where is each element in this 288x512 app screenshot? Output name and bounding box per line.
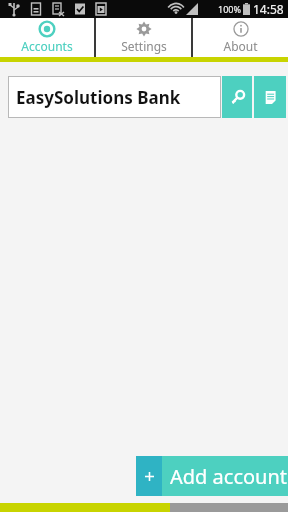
staticText: Add account <box>170 463 288 490</box>
button[interactable]: Add account <box>136 456 288 496</box>
button[interactable]: About <box>193 18 288 57</box>
button[interactable]: Accounts <box>0 18 94 57</box>
staticText: About <box>223 38 258 54</box>
button[interactable]: Show password <box>222 76 252 118</box>
staticText: EasySolutions Bank <box>16 86 181 109</box>
button[interactable]: Settings <box>96 18 191 57</box>
button[interactable]: Notes <box>254 76 286 118</box>
staticText: 14:58 <box>253 1 284 17</box>
button[interactable]: EasySolutions Bank <box>8 76 221 118</box>
staticText: Accounts <box>21 38 73 54</box>
staticText: Settings <box>121 38 167 54</box>
staticText: 100% <box>218 3 241 15</box>
